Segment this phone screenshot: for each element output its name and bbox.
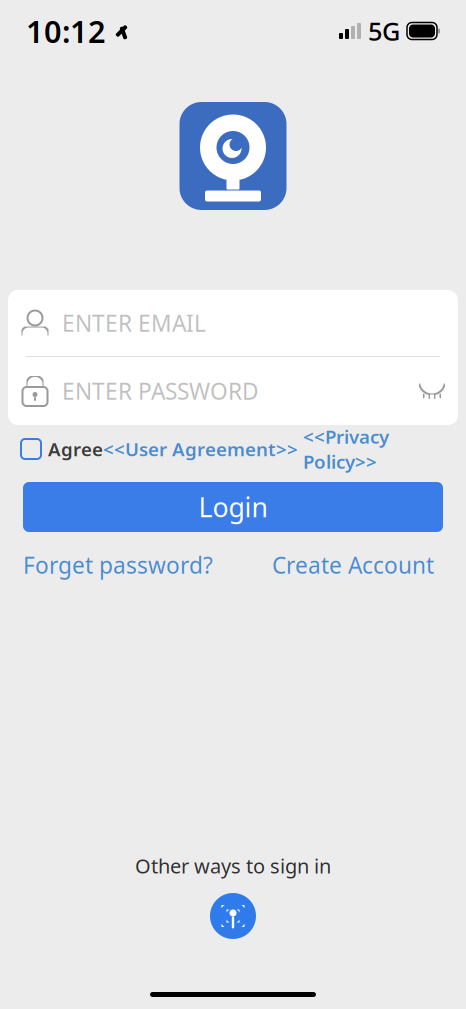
staticText: 10:12	[26, 11, 106, 51]
staticText: <<User Agreement>>	[103, 437, 298, 461]
button[interactable]: ENTER PASSWORD	[8, 357, 458, 425]
button[interactable]: Login	[23, 482, 443, 532]
button[interactable]: Agree to terms	[21, 439, 48, 459]
staticText: ENTER PASSWORD	[62, 376, 259, 406]
staticText: Create Account	[272, 550, 434, 580]
staticText: Login	[198, 489, 267, 525]
staticText: <<Privacy Policy>>	[303, 424, 389, 474]
staticText: ENTER EMAIL	[62, 308, 206, 338]
button[interactable]: Sign in with device	[210, 893, 256, 939]
staticText: Other ways to sign in	[135, 852, 331, 879]
button[interactable]: ENTER EMAIL	[8, 290, 458, 356]
button[interactable]: Agree	[48, 437, 103, 461]
staticText: Forget password?	[23, 550, 213, 580]
staticText: Agree	[48, 437, 103, 461]
button[interactable]: Create Account	[263, 550, 443, 580]
button[interactable]: <<Privacy Policy>>	[303, 424, 389, 474]
button[interactable]: Forget password?	[23, 550, 213, 580]
button[interactable]: <<User Agreement>>	[103, 437, 298, 461]
staticText: 5G	[368, 14, 400, 48]
